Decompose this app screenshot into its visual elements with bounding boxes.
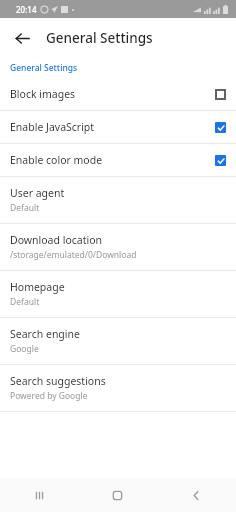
button[interactable]: Back bbox=[157, 478, 236, 512]
button[interactable]: User agent bbox=[0, 177, 236, 223]
staticText: Default bbox=[10, 296, 40, 308]
staticText: User agent bbox=[10, 186, 65, 200]
staticText: General Settings bbox=[46, 29, 153, 47]
button[interactable]: Search suggestions bbox=[0, 365, 236, 411]
staticText: Block images bbox=[10, 87, 215, 101]
staticText: Search engine bbox=[10, 327, 80, 341]
button[interactable]: Home bbox=[78, 478, 157, 512]
staticText: Homepage bbox=[10, 280, 65, 294]
staticText: Enable JavaScript bbox=[10, 120, 215, 134]
staticText: General Settings bbox=[10, 62, 78, 74]
button[interactable]: Block images bbox=[0, 78, 236, 110]
staticText: Default bbox=[10, 202, 40, 214]
staticText: /storage/emulated/0/Download bbox=[10, 249, 137, 261]
button[interactable]: Search engine bbox=[0, 318, 236, 364]
button[interactable]: Enable JavaScript bbox=[0, 111, 236, 143]
button[interactable]: Back bbox=[6, 22, 38, 54]
button[interactable]: Enable color mode bbox=[0, 144, 236, 176]
button[interactable]: Download location bbox=[0, 224, 236, 270]
button[interactable]: Recent apps bbox=[0, 478, 78, 512]
staticText: Enable color mode bbox=[10, 153, 215, 167]
staticText: Powered by Google bbox=[10, 390, 88, 402]
staticText: Search suggestions bbox=[10, 374, 106, 388]
staticText: Download location bbox=[10, 233, 103, 247]
button[interactable]: Homepage bbox=[0, 271, 236, 317]
staticText: Google bbox=[10, 343, 39, 355]
staticText: 20:14 bbox=[16, 4, 37, 15]
